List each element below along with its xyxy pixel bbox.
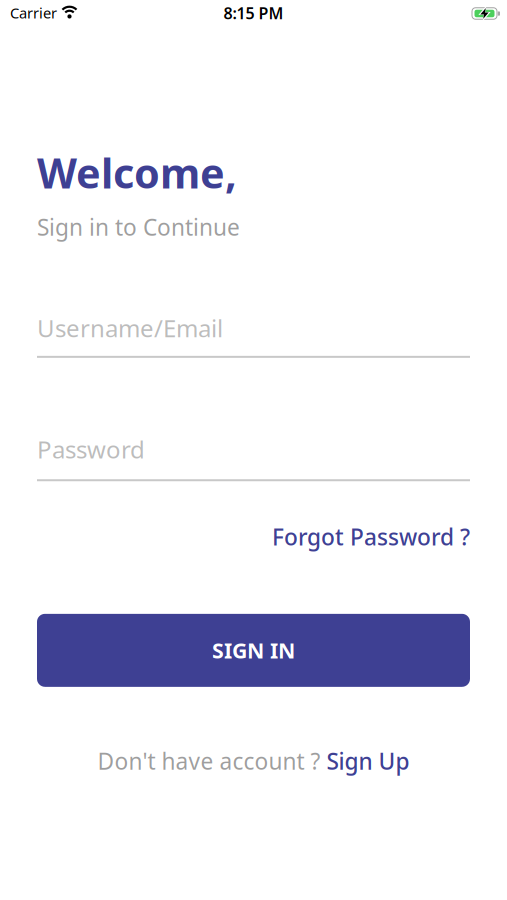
button[interactable]: Sign Up xyxy=(326,746,409,776)
button[interactable]: Username/Email xyxy=(37,242,470,358)
staticText: Password xyxy=(37,433,145,465)
staticText: Sign Up xyxy=(326,746,409,776)
staticText: Sign in to Continue xyxy=(37,212,240,242)
button[interactable]: SIGN IN xyxy=(37,614,470,687)
button[interactable]: Forgot Password ? xyxy=(272,522,470,552)
staticText: 8:15 PM xyxy=(223,2,283,24)
staticText: SIGN IN xyxy=(212,636,295,664)
staticText: Forgot Password ? xyxy=(272,522,470,552)
staticText: Welcome, xyxy=(37,145,237,200)
staticText: Don't have account ? xyxy=(97,746,326,776)
staticText: Carrier xyxy=(10,3,57,22)
staticText: Username/Email xyxy=(37,312,223,344)
button[interactable]: Password xyxy=(37,358,470,481)
